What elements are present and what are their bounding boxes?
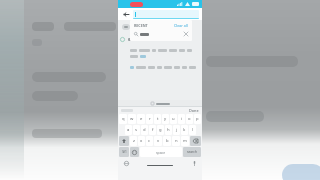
button[interactable]: Compose	[134, 23, 141, 30]
button[interactable]: Change keyboard	[123, 160, 129, 166]
button[interactable]: d	[141, 125, 148, 135]
staticText: v	[157, 138, 160, 144]
button[interactable]: q	[119, 114, 127, 124]
button[interactable]: Backspace	[190, 136, 201, 146]
button[interactable]: w	[128, 114, 136, 124]
button[interactable]: m	[181, 136, 189, 146]
button[interactable]: v	[154, 136, 162, 146]
button[interactable]: z	[130, 136, 137, 146]
button[interactable]: e	[137, 114, 145, 124]
staticText: t	[157, 116, 159, 122]
staticText: m	[183, 138, 187, 144]
button[interactable]: j	[173, 125, 180, 135]
staticText: x	[140, 138, 143, 144]
staticText: s	[135, 127, 138, 133]
staticText: h	[167, 127, 170, 133]
button[interactable]: search	[183, 147, 201, 157]
button[interactable]: s	[133, 125, 140, 135]
staticText: o	[188, 116, 191, 122]
button[interactable]: i	[178, 114, 185, 124]
button[interactable]: g	[157, 125, 164, 135]
staticText: p	[196, 116, 199, 122]
button[interactable]: Emoji	[130, 147, 139, 157]
staticText: k	[183, 127, 186, 133]
button[interactable]: l	[189, 125, 196, 135]
button[interactable]: k	[181, 125, 188, 135]
button[interactable]	[134, 32, 188, 36]
button[interactable]: u	[170, 114, 177, 124]
staticText: c	[148, 138, 151, 144]
staticText: z	[133, 138, 135, 144]
button[interactable]: Shift	[119, 136, 129, 146]
button[interactable]: Symbols	[119, 147, 129, 157]
button[interactable]: b	[163, 136, 171, 146]
button[interactable]: p	[194, 114, 201, 124]
staticText: b	[166, 138, 169, 144]
button[interactable]: o	[186, 114, 193, 124]
button[interactable]	[133, 10, 199, 19]
button[interactable]: Clear all	[174, 23, 188, 28]
staticText: i	[181, 116, 183, 122]
button[interactable]: r	[146, 114, 153, 124]
button[interactable]: f	[149, 125, 156, 135]
button[interactable]: c	[146, 136, 153, 146]
staticText: n	[175, 138, 178, 144]
button[interactable]: Toggle	[122, 24, 130, 30]
staticText: Clear all	[174, 23, 188, 28]
staticText: u	[172, 116, 175, 122]
staticText: RECENT	[134, 23, 148, 28]
staticText: e	[140, 116, 143, 122]
button[interactable]: t	[154, 114, 161, 124]
button[interactable]: space	[140, 147, 182, 157]
staticText: space	[156, 150, 166, 155]
staticText: j	[176, 127, 178, 133]
button[interactable]: a	[125, 125, 132, 135]
staticText: d	[143, 127, 146, 133]
button[interactable]: x	[138, 136, 145, 146]
staticText: search	[187, 150, 197, 154]
staticText: q	[122, 116, 125, 122]
staticText: !#1	[122, 150, 127, 154]
button[interactable]: h	[165, 125, 172, 135]
button[interactable]: Back	[121, 9, 131, 19]
staticText: w	[130, 116, 134, 122]
button[interactable]: y	[162, 114, 169, 124]
staticText: l	[192, 127, 194, 133]
staticText: Done	[189, 108, 199, 113]
staticText: y	[164, 116, 167, 122]
staticText: a	[127, 127, 130, 133]
staticText: r	[149, 116, 151, 122]
button[interactable]: n	[172, 136, 180, 146]
button[interactable]: Voice input	[191, 160, 197, 166]
staticText: f	[152, 127, 154, 133]
button[interactable]: Done	[189, 108, 199, 113]
staticText: g	[159, 127, 162, 133]
